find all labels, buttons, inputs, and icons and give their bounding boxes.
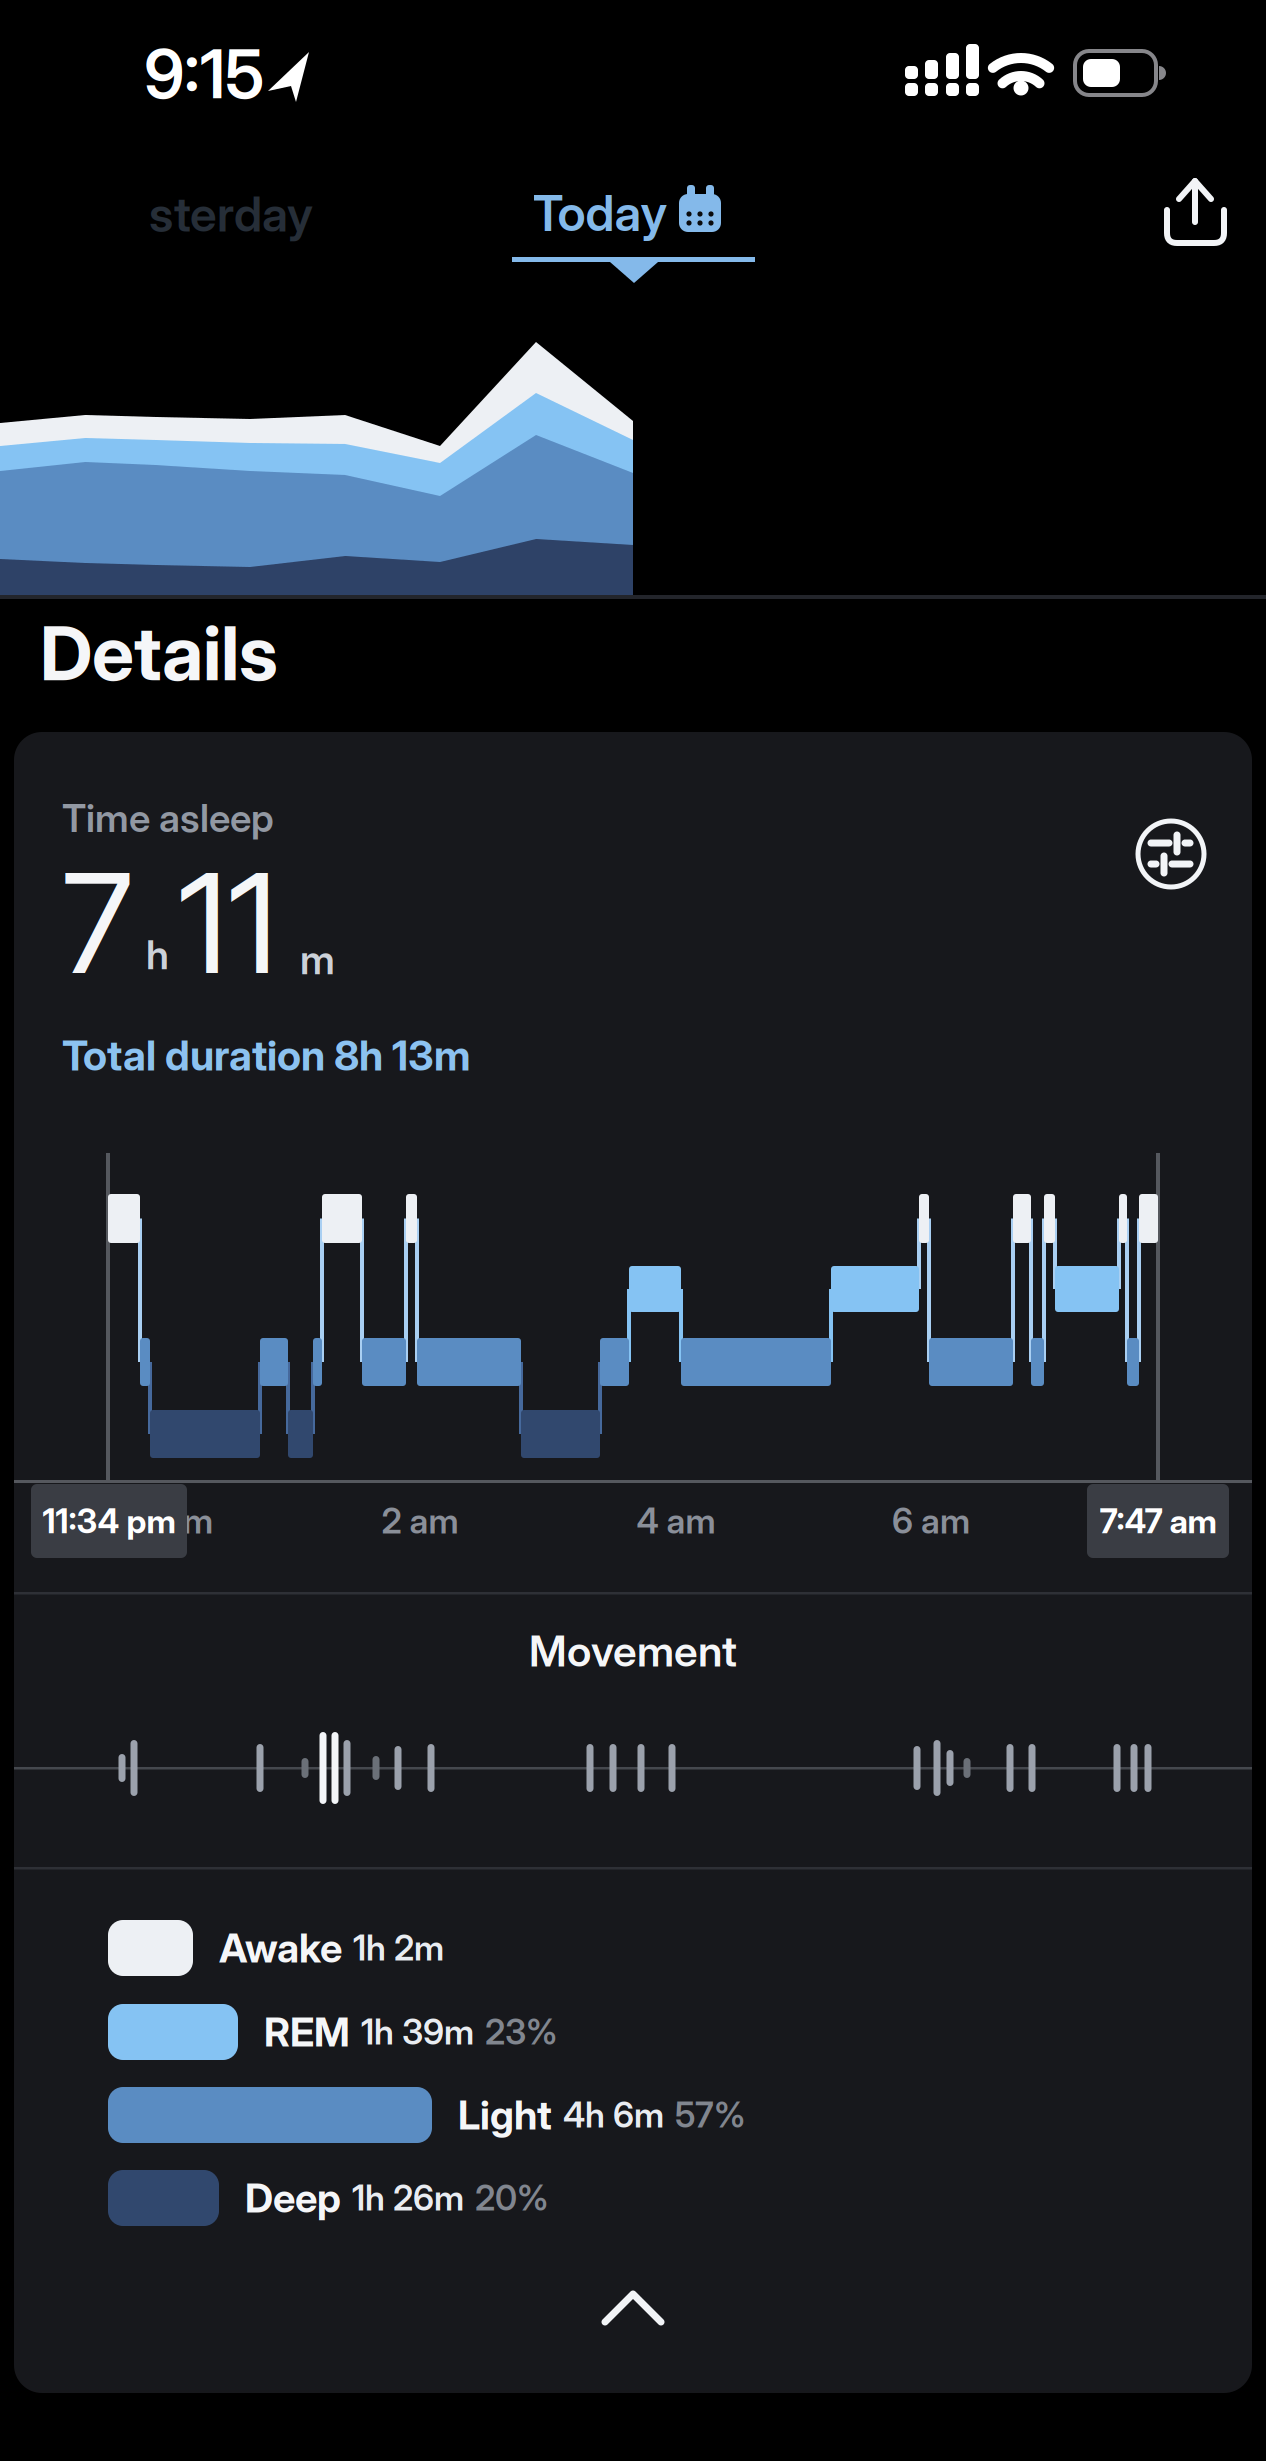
staticText: 1h 26m — [352, 2178, 464, 2218]
staticText: Light — [458, 2091, 552, 2139]
staticText: h — [146, 931, 169, 978]
staticText: 9:15 — [144, 35, 264, 113]
staticText: 11:34 pm — [42, 1501, 175, 1541]
staticText: 4 am — [636, 1501, 715, 1541]
staticText: 6 am — [892, 1501, 970, 1541]
staticText: m — [300, 936, 335, 983]
staticText: Time asleep — [62, 795, 274, 841]
staticText: Today — [532, 184, 667, 242]
staticText: sterday — [149, 186, 313, 242]
staticText: 2 am — [381, 1501, 458, 1541]
staticText: 1h 39m — [361, 2012, 474, 2052]
staticText: Deep — [245, 2174, 341, 2222]
staticText: 11 — [178, 842, 278, 1004]
staticText: REM — [264, 2008, 350, 2056]
staticText: m — [183, 1501, 213, 1541]
staticText: 20% — [475, 2178, 548, 2218]
staticText: 7 — [62, 842, 133, 1004]
staticText: 57% — [675, 2095, 745, 2135]
staticText: 4h 6m — [563, 2095, 664, 2135]
staticText: Total duration 8h 13m — [62, 1031, 471, 1080]
staticText: Awake — [219, 1924, 342, 1972]
staticText: 7:47 am — [1099, 1501, 1216, 1541]
staticText: 23% — [485, 2012, 557, 2052]
staticText: Movement — [529, 1626, 737, 1676]
staticText: 1h 2m — [353, 1928, 444, 1968]
staticText: Details — [40, 609, 278, 697]
